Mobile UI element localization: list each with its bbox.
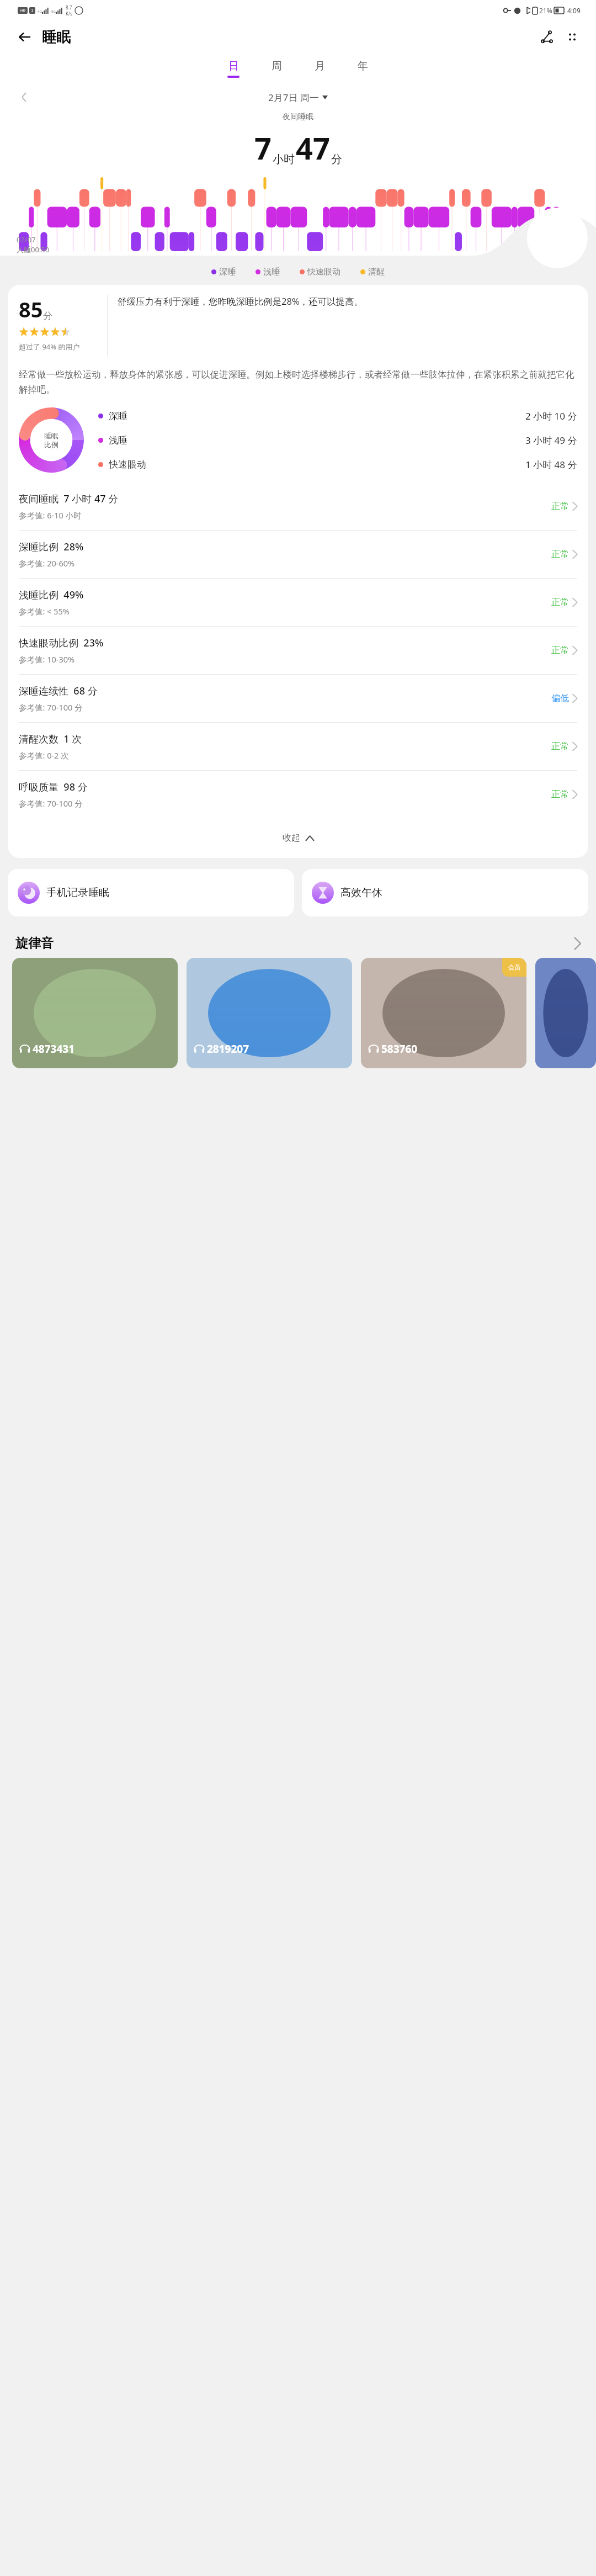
staticText: 快速眼动 [109, 459, 146, 470]
button[interactable]: 2月7日 周一 [264, 89, 332, 106]
staticText: 睡眠 [44, 431, 58, 440]
staticText: 2819207 [207, 1042, 249, 1056]
staticText: 02/07 [17, 235, 36, 245]
staticText: 正常 [551, 549, 569, 560]
staticText: 小时 [273, 152, 295, 166]
staticText: 深睡 [219, 267, 236, 277]
button[interactable]: More options [560, 24, 585, 50]
staticText: 偏低 [551, 693, 569, 704]
staticText: 参考值: 0-2 次 [19, 750, 69, 761]
button[interactable]: 周 [267, 59, 286, 79]
staticText: 正常 [551, 501, 569, 512]
button[interactable]: 手机记录睡眠 [8, 869, 294, 916]
staticText: 手机记录睡眠 [46, 886, 109, 899]
staticText: 浅睡 [109, 434, 127, 446]
button[interactable]: 深睡连续性 68 分 [19, 675, 577, 722]
staticText: 年 [358, 60, 368, 73]
staticText: 经常做一些放松运动，释放身体的紧张感，可以促进深睡。例如上楼时选择楼梯步行，或者… [19, 369, 577, 395]
staticText: 周 [272, 60, 282, 73]
button[interactable]: 月 [310, 59, 329, 79]
button[interactable]: 深睡比例 28% [19, 531, 577, 578]
staticText: 高效午休 [340, 886, 382, 899]
staticText: 47 [296, 128, 330, 168]
staticText: 快速眼动 [307, 267, 340, 277]
staticText: 参考值: 20-60% [19, 558, 75, 569]
button[interactable]: Back [12, 24, 38, 50]
button[interactable] [535, 958, 596, 1068]
button[interactable]: 年 [353, 59, 372, 79]
staticText: 分 [331, 152, 342, 166]
button[interactable]: 会员 [361, 958, 526, 1068]
staticText: 浅睡比例 49% [19, 588, 84, 602]
staticText: 深睡比例 28% [19, 540, 84, 554]
staticText: 深睡 [109, 410, 127, 422]
staticText: 超过了 94% 的用户 [19, 342, 80, 352]
button[interactable]: 夜间睡眠 7 小时 47 分 [19, 483, 577, 530]
staticText: 正常 [551, 741, 569, 752]
staticText: 分 [43, 310, 52, 322]
staticText: 4873431 [33, 1042, 75, 1056]
button[interactable]: 呼吸质量 98 分 [19, 771, 577, 818]
staticText: 2 [31, 8, 34, 13]
staticText: 舒缓压力有利于深睡，您昨晚深睡比例是28%，还可以提高。 [118, 295, 364, 308]
staticText: 夜间睡眠 [0, 112, 596, 122]
button[interactable]: 旋律音 [0, 935, 596, 951]
button[interactable]: Share [534, 24, 560, 50]
staticText: 呼吸质量 98 分 [19, 780, 88, 794]
staticText: 参考值: 70-100 分 [19, 702, 83, 713]
staticText: 4G [38, 9, 42, 14]
staticText: 7 [254, 128, 272, 168]
staticText: 深睡连续性 68 分 [19, 684, 98, 698]
staticText: 旋律音 [15, 935, 54, 951]
staticText: 浅睡 [263, 267, 280, 277]
staticText: 正常 [551, 789, 569, 800]
staticText: 日 [228, 60, 239, 73]
button[interactable]: 4873431 [12, 958, 178, 1068]
staticText: 快速眼动比例 23% [19, 636, 104, 650]
staticText: 5G [51, 9, 56, 14]
button[interactable]: 收起 [19, 818, 577, 858]
staticText: 参考值: 70-100 分 [19, 798, 83, 809]
button[interactable]: 日 [224, 59, 243, 79]
staticText: 4:09 [567, 6, 581, 15]
staticText: 月 [315, 60, 325, 73]
staticText: HD [20, 8, 25, 13]
staticText: 收起 [283, 833, 300, 844]
staticText: 8.7 [66, 4, 72, 10]
staticText: 2月7日 周一 [268, 91, 319, 104]
button[interactable]: 2819207 [187, 958, 352, 1068]
staticText: 3 小时 49 分 [525, 434, 577, 447]
staticText: 2 小时 10 分 [525, 410, 577, 422]
staticText: 1 小时 48 分 [525, 458, 577, 471]
staticText: 参考值: < 55% [19, 606, 70, 617]
staticText: 入睡00:50 [17, 245, 50, 255]
staticText: 比例 [44, 440, 58, 449]
staticText: 清醒次数 1 次 [19, 732, 82, 746]
staticText: 正常 [551, 597, 569, 608]
button[interactable]: 浅睡比例 49% [19, 579, 577, 626]
staticText: 583760 [381, 1042, 418, 1056]
staticText: 夜间睡眠 7 小时 47 分 [19, 492, 119, 506]
staticText: 参考值: 10-30% [19, 654, 75, 665]
staticText: 参考值: 6-10 小时 [19, 510, 82, 521]
staticText: 正常 [551, 645, 569, 656]
button[interactable]: Previous day [13, 87, 35, 108]
staticText: 21% [539, 6, 552, 15]
button[interactable]: 快速眼动比例 23% [19, 627, 577, 674]
button[interactable]: 高效午休 [302, 869, 588, 916]
staticText: 85 [19, 295, 43, 324]
staticText: 会员 [508, 963, 520, 971]
button[interactable]: 清醒次数 1 次 [19, 723, 577, 770]
staticText: 睡眠 [42, 28, 71, 46]
staticText: K/s [66, 10, 72, 17]
staticText: 清醒 [368, 267, 385, 277]
